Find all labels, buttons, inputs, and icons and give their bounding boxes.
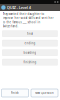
staticText: final bbox=[27, 32, 33, 35]
button[interactable]: ending bbox=[2, 40, 58, 46]
staticText: ending bbox=[24, 41, 35, 45]
staticText: They wanted their daughter to improve he… bbox=[2, 12, 53, 28]
staticText: finishing bbox=[23, 60, 36, 64]
button[interactable]: finishing bbox=[2, 59, 58, 65]
button[interactable]: boarding bbox=[2, 49, 58, 56]
staticText: Next Question bbox=[35, 91, 54, 95]
button[interactable]: Finish bbox=[1, 89, 28, 97]
button[interactable]: Next Question bbox=[31, 89, 58, 97]
staticText: QUIZ - Level 4 bbox=[7, 5, 31, 10]
staticText: Finish bbox=[11, 91, 19, 95]
staticText: boarding bbox=[23, 51, 36, 54]
button[interactable]: final bbox=[2, 30, 58, 37]
